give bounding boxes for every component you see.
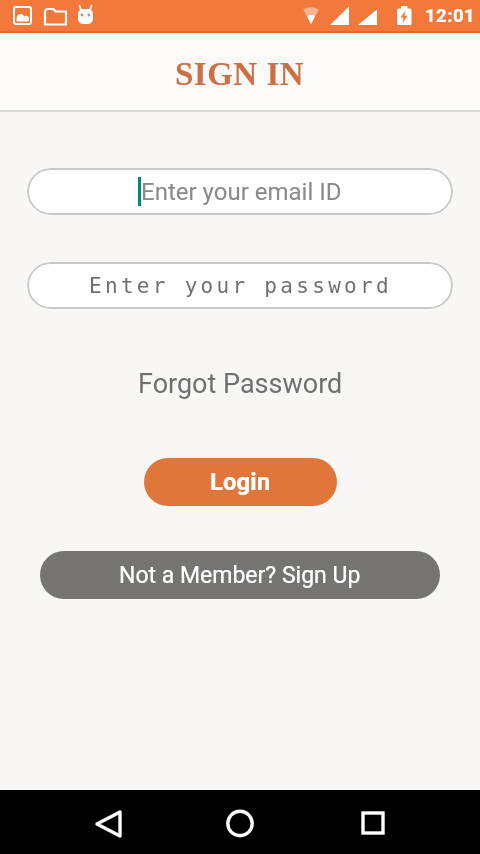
- button[interactable]: Enter your email ID: [27, 168, 453, 215]
- staticText: Enter your email ID: [141, 178, 342, 206]
- staticText: 12:01: [425, 5, 476, 27]
- button[interactable]: [343, 792, 403, 852]
- staticText: Enter your password: [89, 274, 392, 298]
- staticText: Not a Member? Sign Up: [119, 562, 361, 589]
- button[interactable]: Not a Member? Sign Up: [40, 551, 440, 599]
- button[interactable]: Login: [144, 458, 337, 506]
- staticText: Login: [210, 468, 271, 496]
- button[interactable]: [78, 792, 138, 852]
- button[interactable]: Enter your password: [27, 262, 453, 309]
- button[interactable]: Forgot Password: [138, 368, 343, 400]
- staticText: SIGN IN: [175, 56, 305, 93]
- button[interactable]: [210, 792, 270, 852]
